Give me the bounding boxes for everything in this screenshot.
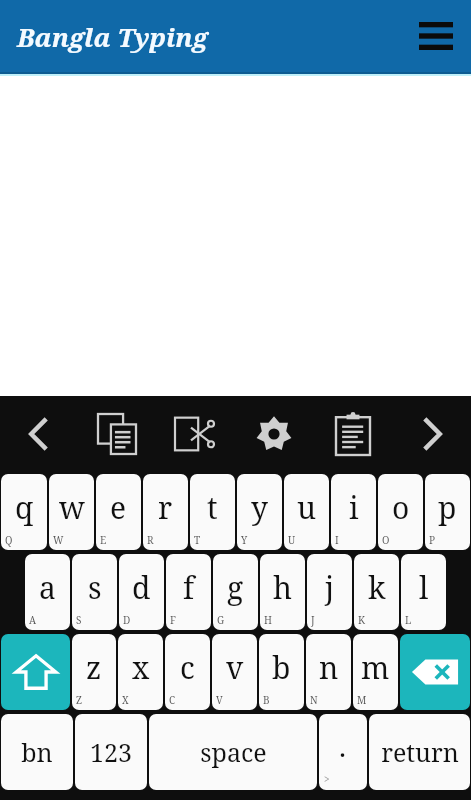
staticText: S <box>76 613 82 627</box>
button[interactable]: e <box>96 474 141 550</box>
staticText: b <box>272 647 291 688</box>
staticText: v <box>226 647 244 688</box>
staticText: P <box>429 533 436 547</box>
staticText: F <box>170 613 176 627</box>
staticText: L <box>405 613 412 627</box>
staticText: G <box>217 613 225 627</box>
staticText: h <box>273 567 293 608</box>
button[interactable]: s <box>72 554 117 630</box>
button[interactable]: z <box>72 634 116 710</box>
button[interactable]: . <box>319 714 367 790</box>
button[interactable]: t <box>190 474 235 550</box>
staticText: x <box>132 647 150 688</box>
staticText: bn <box>21 735 53 769</box>
button[interactable]: h <box>260 554 305 630</box>
button[interactable]: Next <box>392 396 471 472</box>
staticText: O <box>382 533 390 547</box>
staticText: . <box>339 727 347 765</box>
staticText: B <box>263 693 270 707</box>
button[interactable]: u <box>284 474 329 550</box>
staticText: W <box>53 533 64 547</box>
staticText: H <box>264 613 272 627</box>
button[interactable]: d <box>119 554 164 630</box>
staticText: w <box>59 487 85 528</box>
button[interactable]: Cut <box>156 396 234 472</box>
staticText: c <box>180 647 195 688</box>
staticText: a <box>39 567 56 608</box>
staticText: q <box>15 487 34 528</box>
staticText: J <box>311 613 315 627</box>
staticText: p <box>438 487 457 528</box>
button[interactable]: Backspace <box>400 634 470 710</box>
staticText: n <box>319 647 339 688</box>
staticText: C <box>169 693 176 707</box>
button[interactable]: bn <box>1 714 73 790</box>
staticText: r <box>158 487 173 528</box>
staticText: return <box>381 735 459 769</box>
button[interactable]: g <box>213 554 258 630</box>
staticText: T <box>194 533 201 547</box>
staticText: I <box>335 533 339 547</box>
button[interactable]: l <box>401 554 446 630</box>
staticText: g <box>227 567 244 608</box>
button[interactable]: m <box>353 634 398 710</box>
staticText: o <box>392 487 410 528</box>
staticText: f <box>183 567 195 608</box>
staticText: N <box>310 693 318 707</box>
staticText: V <box>216 693 223 707</box>
button[interactable]: space <box>149 714 317 790</box>
staticText: R <box>147 533 154 547</box>
staticText: e <box>110 487 127 528</box>
staticText: m <box>361 647 390 688</box>
staticText: space <box>200 735 267 769</box>
staticText: Z <box>76 693 82 707</box>
button[interactable]: Menu <box>409 9 463 63</box>
staticText: y <box>251 487 268 528</box>
staticText: U <box>288 533 296 547</box>
button[interactable]: n <box>306 634 351 710</box>
button[interactable]: k <box>354 554 399 630</box>
button[interactable]: a <box>25 554 70 630</box>
button[interactable]: w <box>49 474 94 550</box>
button[interactable]: b <box>259 634 304 710</box>
button[interactable]: Copy <box>78 396 156 472</box>
staticText: l <box>419 567 429 608</box>
button[interactable]: Shift <box>1 634 70 710</box>
button[interactable]: o <box>378 474 423 550</box>
button[interactable]: Settings <box>234 396 313 472</box>
button[interactable]: v <box>212 634 257 710</box>
button[interactable]: j <box>307 554 352 630</box>
staticText: D <box>123 613 131 627</box>
staticText: j <box>325 567 334 608</box>
staticText: Y <box>241 533 248 547</box>
staticText: z <box>86 647 102 688</box>
button[interactable]: x <box>118 634 163 710</box>
staticText: Bangla Typing <box>17 19 208 54</box>
staticText: X <box>122 693 129 707</box>
staticText: d <box>132 567 151 608</box>
staticText: i <box>349 487 359 528</box>
button[interactable]: i <box>331 474 376 550</box>
button[interactable]: 123 <box>75 714 147 790</box>
button[interactable]: Previous <box>0 396 78 472</box>
staticText: 123 <box>90 735 132 769</box>
button[interactable]: p <box>425 474 470 550</box>
button[interactable]: return <box>369 714 470 790</box>
staticText: s <box>88 567 102 608</box>
button[interactable]: q <box>1 474 47 550</box>
button[interactable]: r <box>143 474 188 550</box>
staticText: K <box>358 613 365 627</box>
staticText: M <box>357 693 367 707</box>
staticText: k <box>368 567 386 608</box>
button[interactable]: y <box>237 474 282 550</box>
staticText: Q <box>5 533 13 547</box>
button[interactable]: c <box>165 634 210 710</box>
staticText: A <box>29 613 37 627</box>
staticText: t <box>207 487 218 528</box>
button[interactable]: Paste <box>313 396 392 472</box>
button[interactable]: f <box>166 554 211 630</box>
staticText: E <box>100 533 107 547</box>
staticText: > <box>324 772 330 786</box>
staticText: u <box>297 487 317 528</box>
